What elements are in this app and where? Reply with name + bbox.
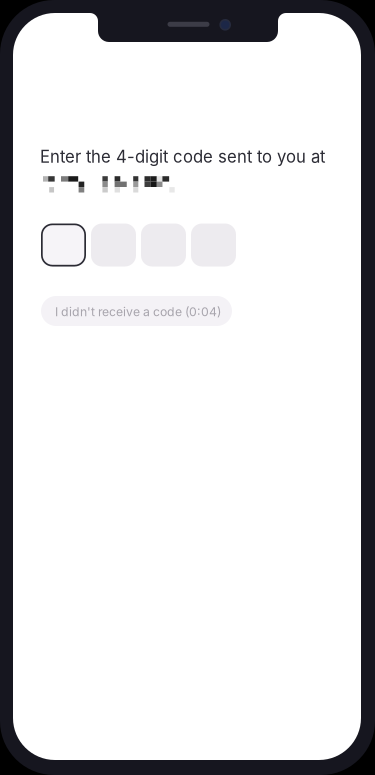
staticText: Enter the 4-digit code sent to you at [40, 146, 325, 167]
button[interactable]: Code digit [41, 223, 86, 266]
button[interactable]: I didn't receive a code (0:04) [41, 296, 232, 326]
button[interactable]: Code digit [141, 223, 186, 266]
staticText: I didn't receive a code (0:04) [55, 304, 221, 319]
button[interactable]: Code digit [191, 223, 236, 266]
button[interactable]: Code digit [91, 223, 136, 266]
